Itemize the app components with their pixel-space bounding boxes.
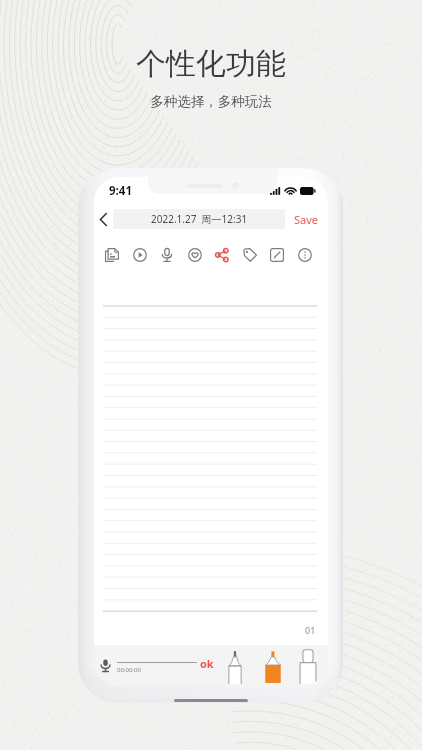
button[interactable]: Eraser — [299, 645, 317, 685]
button[interactable]: Play — [128, 243, 152, 267]
button[interactable]: Record — [96, 653, 114, 677]
button[interactable]: Back — [94, 208, 113, 230]
staticText: 01 — [305, 624, 316, 636]
button[interactable]: Pen — [228, 645, 242, 685]
staticText: 9:41 — [109, 183, 132, 199]
button[interactable]: Save — [285, 208, 328, 230]
button[interactable]: Tag — [238, 243, 262, 267]
button[interactable]: Highlighter — [264, 645, 282, 685]
button[interactable]: Share — [210, 243, 234, 267]
staticText: 00:00:00 — [117, 666, 141, 674]
staticText: 2022.1.27 周一12:31 — [151, 212, 248, 226]
button[interactable]: Edit — [265, 243, 289, 267]
staticText: 多种选择，多种玩法 — [150, 93, 272, 110]
button[interactable]: Copy document — [100, 243, 124, 267]
button[interactable]: More options — [293, 243, 317, 267]
staticText: Save — [294, 212, 319, 227]
staticText: ok — [200, 656, 214, 671]
button[interactable]: ok — [197, 653, 217, 677]
staticText: 个性化功能 — [136, 45, 286, 83]
button[interactable]: Record audio — [155, 243, 179, 267]
button[interactable]: Favorite — [183, 243, 207, 267]
button[interactable]: 2022.1.27 周一12:31 — [113, 209, 285, 229]
